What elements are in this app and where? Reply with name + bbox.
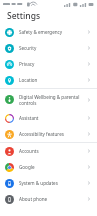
staticText: Location (19, 77, 86, 83)
staticText: Assistant (19, 115, 86, 121)
button[interactable]: Safety & emergency (0, 24, 97, 40)
staticText: Privacy (19, 61, 86, 67)
other: Open Digital Wellbeing & parental contro… (86, 97, 92, 103)
button[interactable]: About phone (0, 191, 97, 207)
staticText: Safety & emergency (19, 29, 86, 35)
staticText: Security (19, 45, 86, 51)
staticText: Accessibility features (19, 131, 86, 137)
button[interactable]: Accounts (0, 143, 97, 159)
button[interactable]: Accessibility features (0, 126, 97, 142)
staticText: Settings (7, 10, 41, 22)
button[interactable]: Privacy (0, 56, 97, 72)
button[interactable]: Security (0, 40, 97, 56)
other: Open Privacy (86, 61, 92, 67)
staticText: Google (19, 164, 86, 170)
button[interactable]: System & updates (0, 175, 97, 191)
other: Open Accounts (86, 148, 92, 154)
button[interactable]: Assistant (0, 110, 97, 126)
other: Open Security (86, 45, 92, 51)
other: Open Accessibility features (86, 131, 92, 137)
other: Open Safety & emergency (86, 29, 92, 35)
staticText: Digital Wellbeing & parental controls (19, 94, 86, 106)
other: Open Assistant (86, 115, 92, 121)
other: Open Google (86, 164, 92, 170)
button[interactable]: Location (0, 72, 97, 88)
staticText: About phone (19, 196, 86, 202)
staticText: System & updates (19, 180, 86, 186)
button[interactable]: Google (0, 159, 97, 175)
other: Open System & updates (86, 180, 92, 186)
staticText: Accounts (19, 148, 86, 154)
button[interactable]: Digital Wellbeing & parental controls (0, 89, 97, 110)
other: Open Location (86, 77, 92, 83)
other: Open About phone (86, 196, 92, 202)
